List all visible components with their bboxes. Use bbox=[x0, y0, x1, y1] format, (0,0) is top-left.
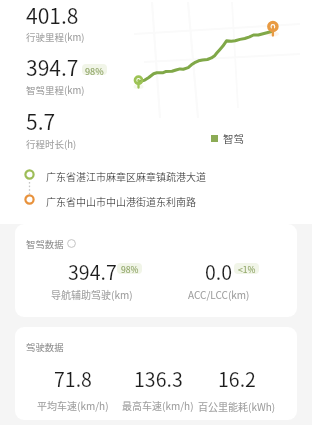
staticText: 98% bbox=[85, 64, 104, 75]
staticText: 智驾数据 bbox=[26, 237, 64, 251]
staticText: 16.2 bbox=[218, 364, 256, 392]
staticText: 394.7 bbox=[26, 52, 79, 82]
staticText: 智驾里程(km) bbox=[26, 83, 85, 97]
button[interactable]: 驾驶数据 bbox=[15, 327, 297, 420]
staticText: 百公里能耗(kWh) bbox=[198, 399, 276, 413]
staticText: 行程时长(h) bbox=[26, 137, 77, 151]
other: 智驾数据说明 bbox=[67, 239, 76, 248]
staticText: 401.8 bbox=[26, 0, 79, 30]
staticText: 行驶里程(km) bbox=[26, 30, 85, 44]
staticText: 394.7 bbox=[68, 257, 117, 285]
staticText: 5.7 bbox=[26, 106, 56, 136]
staticText: 广东省中山市中山港街道东利南路 bbox=[46, 194, 196, 208]
staticText: 驾驶数据 bbox=[26, 340, 64, 354]
staticText: ACC/LCC(km) bbox=[188, 287, 250, 301]
staticText: 最高车速(km/h) bbox=[122, 398, 194, 412]
staticText: 平均车速(km/h) bbox=[37, 398, 109, 412]
button[interactable]: 智驾数据 bbox=[15, 224, 297, 317]
staticText: 智驾 bbox=[223, 131, 244, 146]
staticText: 广东省湛江市麻章区麻章镇疏港大道 bbox=[46, 169, 206, 183]
staticText: 导航辅助驾驶(km) bbox=[51, 287, 133, 301]
staticText: <1% bbox=[238, 263, 256, 274]
staticText: 0.0 bbox=[205, 257, 233, 285]
staticText: 98% bbox=[121, 263, 139, 274]
staticText: 136.3 bbox=[134, 364, 183, 392]
staticText: 71.8 bbox=[54, 364, 92, 392]
